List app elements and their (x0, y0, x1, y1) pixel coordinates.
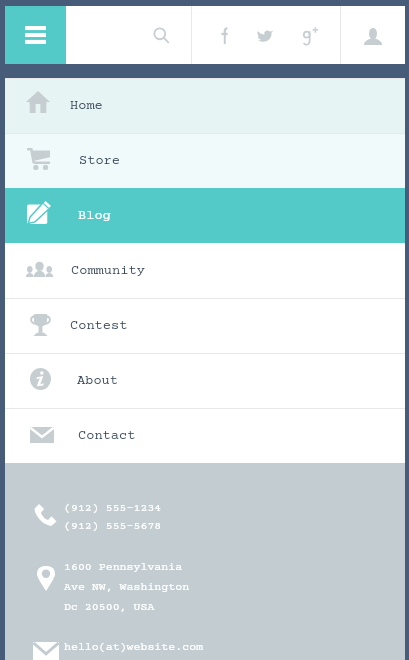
button[interactable]: Open navigation menu (5, 6, 66, 64)
button[interactable]: About (5, 353, 405, 408)
staticText: 1600 Pennsylvania (64, 561, 183, 574)
staticText: About (77, 373, 119, 388)
staticText: hello(at)website.com (64, 641, 204, 654)
staticText: Home (70, 98, 103, 113)
button[interactable]: Contact (5, 408, 405, 463)
button[interactable]: Twitter (244, 6, 286, 64)
button[interactable]: Home (5, 78, 405, 133)
staticText: Contact (78, 428, 136, 443)
staticText: Store (79, 153, 121, 168)
staticText: Community (71, 263, 145, 278)
staticText: (912) 555-1234 (64, 502, 162, 515)
staticText: (912) 555-5678 (64, 520, 162, 533)
staticText: Dc 20500, USA (64, 601, 155, 614)
staticText: Contest (70, 318, 128, 333)
button[interactable]: hello(at)website.com (29, 636, 249, 660)
button[interactable]: Google Plus (289, 6, 331, 64)
button[interactable]: Community (5, 243, 405, 298)
staticText: Blog (78, 208, 111, 223)
button[interactable]: Account (341, 6, 409, 64)
button[interactable]: Search (66, 6, 191, 64)
button[interactable]: Store (5, 133, 405, 188)
staticText: Ave NW, Washington (64, 581, 190, 594)
button[interactable]: (912) 555-1234 (29, 495, 204, 543)
button[interactable]: Blog (5, 188, 405, 243)
button[interactable]: Facebook (192, 6, 256, 64)
button[interactable]: 1600 Pennsylvania (29, 561, 229, 625)
button[interactable]: Contest (5, 298, 405, 353)
